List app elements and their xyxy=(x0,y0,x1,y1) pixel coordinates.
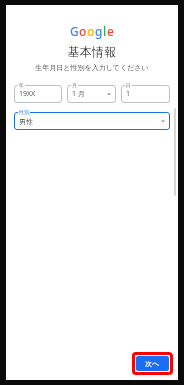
staticText: 基本情報 xyxy=(6,44,178,59)
button[interactable] xyxy=(121,85,170,103)
staticText: 19XX xyxy=(19,89,36,99)
button[interactable] xyxy=(14,112,170,130)
staticText: 1 月 xyxy=(72,89,85,99)
staticText: 年 xyxy=(19,82,24,88)
staticText: 性別 xyxy=(19,109,29,115)
staticText: G xyxy=(70,23,79,39)
staticText: 日 xyxy=(126,82,131,88)
button[interactable] xyxy=(67,85,116,103)
button[interactable] xyxy=(14,85,62,103)
staticText: l xyxy=(103,23,107,39)
staticText: o xyxy=(87,23,95,39)
staticText: o xyxy=(79,23,87,39)
staticText: 次へ xyxy=(145,359,160,368)
staticText: 男性 xyxy=(19,117,33,126)
staticText: e xyxy=(107,23,114,39)
staticText: g xyxy=(95,23,103,39)
staticText: 1 xyxy=(126,89,131,99)
button[interactable]: 次へ xyxy=(136,356,169,371)
staticText: 月 xyxy=(72,82,77,88)
staticText: 生年月日と性別を入力してください xyxy=(6,63,178,72)
